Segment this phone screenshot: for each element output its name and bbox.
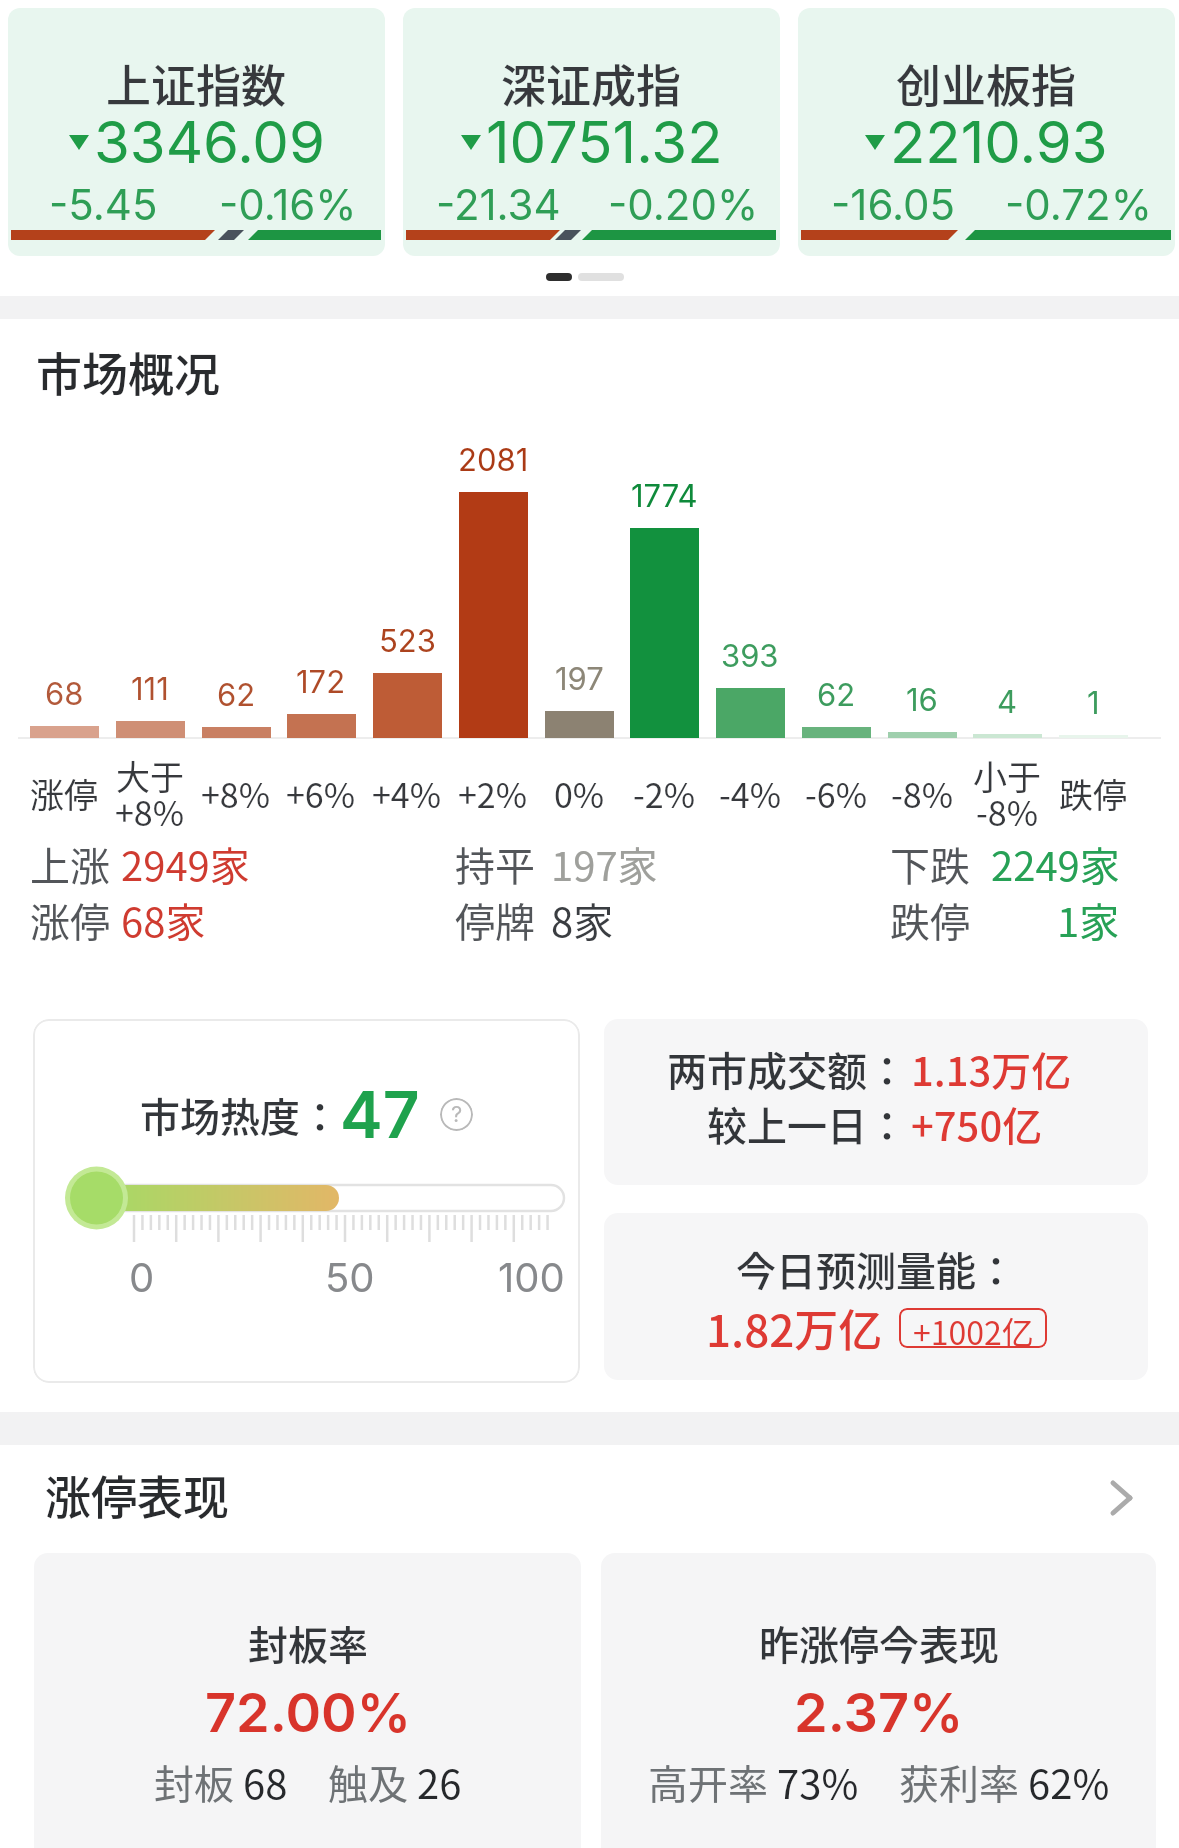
staticText: +2%: [458, 769, 528, 818]
staticText: 72.00%: [205, 1680, 411, 1745]
staticText: -0.72%: [1005, 179, 1152, 230]
staticText: 0%: [554, 769, 605, 818]
staticText: 深证成指: [501, 51, 682, 116]
staticText: +8%: [115, 787, 185, 836]
staticText: 197: [555, 660, 604, 698]
staticText: 50: [325, 1253, 375, 1301]
staticText: -0.16%: [219, 179, 357, 230]
staticText: 68: [45, 675, 84, 713]
staticText: 62%: [1028, 1753, 1110, 1811]
staticText: ?: [451, 1101, 463, 1128]
staticText: 跌停: [1059, 769, 1127, 818]
staticText: 1.82万亿: [706, 1296, 883, 1360]
button[interactable]: 昨涨停今表现: [601, 1553, 1156, 1848]
staticText: 393: [721, 637, 779, 675]
staticText: 73%: [777, 1753, 859, 1811]
staticText: 较上一日：: [707, 1095, 907, 1153]
staticText: 2210.93: [890, 107, 1108, 177]
staticText: -8%: [891, 769, 953, 818]
staticText: 触及: [328, 1753, 417, 1811]
staticText: 停牌: [455, 891, 535, 949]
button[interactable]: 今日预测量能：: [604, 1213, 1148, 1380]
staticText: 涨停: [30, 769, 98, 818]
staticText: +750亿: [911, 1095, 1043, 1153]
staticText: 1.13万亿: [911, 1040, 1072, 1098]
staticText: +1002亿: [913, 1308, 1034, 1348]
staticText: 封板率: [248, 1614, 368, 1672]
staticText: 4: [997, 683, 1018, 721]
staticText: -16.05: [831, 179, 956, 230]
staticText: -8%: [976, 787, 1038, 836]
staticText: 47: [340, 1076, 420, 1153]
staticText: 上证指数: [106, 51, 287, 116]
staticText: +8%: [201, 769, 271, 818]
staticText: -21.34: [436, 179, 561, 230]
staticText: 2949家: [121, 835, 250, 893]
button[interactable]: 涨停表现: [34, 1462, 1146, 1534]
staticText: 68家: [121, 891, 206, 949]
staticText: 3346.09: [94, 107, 325, 177]
staticText: 10751.32: [486, 107, 723, 177]
button[interactable]: 创业板指: [798, 8, 1175, 256]
staticText: 1: [1087, 684, 1100, 722]
staticText: +6%: [286, 769, 356, 818]
staticText: 今日预测量能：: [736, 1240, 1016, 1298]
staticText: 523: [379, 622, 436, 660]
staticText: 大于: [116, 751, 184, 800]
staticText: 1774: [631, 477, 698, 515]
staticText: 16: [906, 681, 938, 719]
staticText: 涨停: [30, 891, 110, 949]
staticText: 获利率: [899, 1753, 1028, 1811]
staticText: 2.37%: [794, 1680, 964, 1745]
staticText: -5.45: [49, 179, 158, 230]
staticText: 8家: [551, 891, 614, 949]
staticText: 0: [129, 1253, 155, 1301]
staticText: 昨涨停今表现: [759, 1614, 999, 1672]
staticText: 封板: [154, 1753, 243, 1811]
staticText: +4%: [372, 769, 442, 818]
staticText: 下跌: [890, 835, 970, 893]
staticText: 100: [498, 1253, 565, 1301]
staticText: -0.20%: [608, 179, 759, 230]
staticText: 68: [243, 1753, 288, 1811]
staticText: 持平: [455, 835, 535, 893]
staticText: 市场热度：: [140, 1086, 340, 1144]
staticText: 2081: [458, 441, 529, 479]
staticText: -2%: [633, 769, 695, 818]
staticText: -4%: [719, 769, 781, 818]
staticText: 跌停: [890, 891, 970, 949]
staticText: 2249家: [991, 835, 1120, 893]
staticText: 197家: [551, 835, 658, 893]
staticText: 涨停表现: [45, 1461, 229, 1528]
staticText: 小于: [973, 751, 1041, 800]
staticText: -6%: [805, 769, 867, 818]
staticText: 62: [217, 676, 256, 714]
staticText: 创业板指: [896, 51, 1077, 116]
button[interactable]: 上证指数: [8, 8, 385, 256]
button[interactable]: 市场热度：: [33, 1019, 580, 1383]
staticText: 高开率: [648, 1753, 777, 1811]
button[interactable]: 封板率: [34, 1553, 581, 1848]
staticText: 1家: [1057, 891, 1120, 949]
staticText: 上涨: [30, 835, 110, 893]
staticText: 62: [817, 676, 856, 714]
staticText: 111: [131, 670, 169, 708]
button[interactable]: 深证成指: [403, 8, 780, 256]
button[interactable]: 两市成交额：: [604, 1019, 1148, 1185]
staticText: 172: [296, 663, 346, 701]
staticText: 两市成交额：: [667, 1040, 907, 1098]
staticText: 市场概况: [36, 338, 220, 405]
staticText: 26: [417, 1753, 462, 1811]
